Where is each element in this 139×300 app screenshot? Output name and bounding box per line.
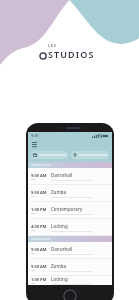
button[interactable]: 9:00 AM bbox=[28, 168, 112, 185]
button[interactable]: 4:00 PM bbox=[28, 219, 112, 236]
button[interactable]: Les Studios logo bbox=[39, 43, 95, 60]
staticText: Contemporary bbox=[51, 206, 83, 212]
staticText: 1:00 PM bbox=[31, 277, 47, 282]
staticText: Locking bbox=[51, 276, 68, 282]
staticText: 9:00 AM bbox=[31, 247, 47, 252]
staticText: 1:00 PM bbox=[31, 207, 47, 212]
staticText: Locking bbox=[51, 223, 68, 229]
staticText: Dancehall bbox=[51, 246, 73, 252]
staticText: 9:50 AM bbox=[31, 264, 47, 269]
button[interactable] bbox=[71, 151, 109, 159]
button[interactable] bbox=[28, 236, 112, 242]
button[interactable]: 9:50 AM bbox=[28, 259, 112, 276]
staticText: Dancehall bbox=[51, 172, 73, 178]
staticText: LES bbox=[48, 43, 57, 48]
button[interactable]: 1:00 PM bbox=[28, 202, 112, 219]
staticText: STUDIOS bbox=[48, 48, 95, 60]
staticText: 9:50 AM bbox=[31, 190, 47, 195]
button[interactable] bbox=[31, 151, 68, 159]
button[interactable] bbox=[28, 162, 112, 168]
button[interactable]: Home bbox=[63, 289, 77, 300]
staticText: Zumba bbox=[51, 263, 67, 269]
staticText: Zumba bbox=[51, 189, 67, 195]
staticText: 9:41 bbox=[31, 133, 39, 138]
button[interactable]: 9:50 AM bbox=[28, 185, 112, 202]
button[interactable]: 9:00 AM bbox=[28, 242, 112, 259]
button[interactable]: 1:00 PM bbox=[28, 276, 112, 285]
button[interactable]: Menu bbox=[31, 141, 38, 148]
staticText: 4:00 PM bbox=[31, 224, 47, 229]
staticText: 9:00 AM bbox=[31, 173, 47, 178]
